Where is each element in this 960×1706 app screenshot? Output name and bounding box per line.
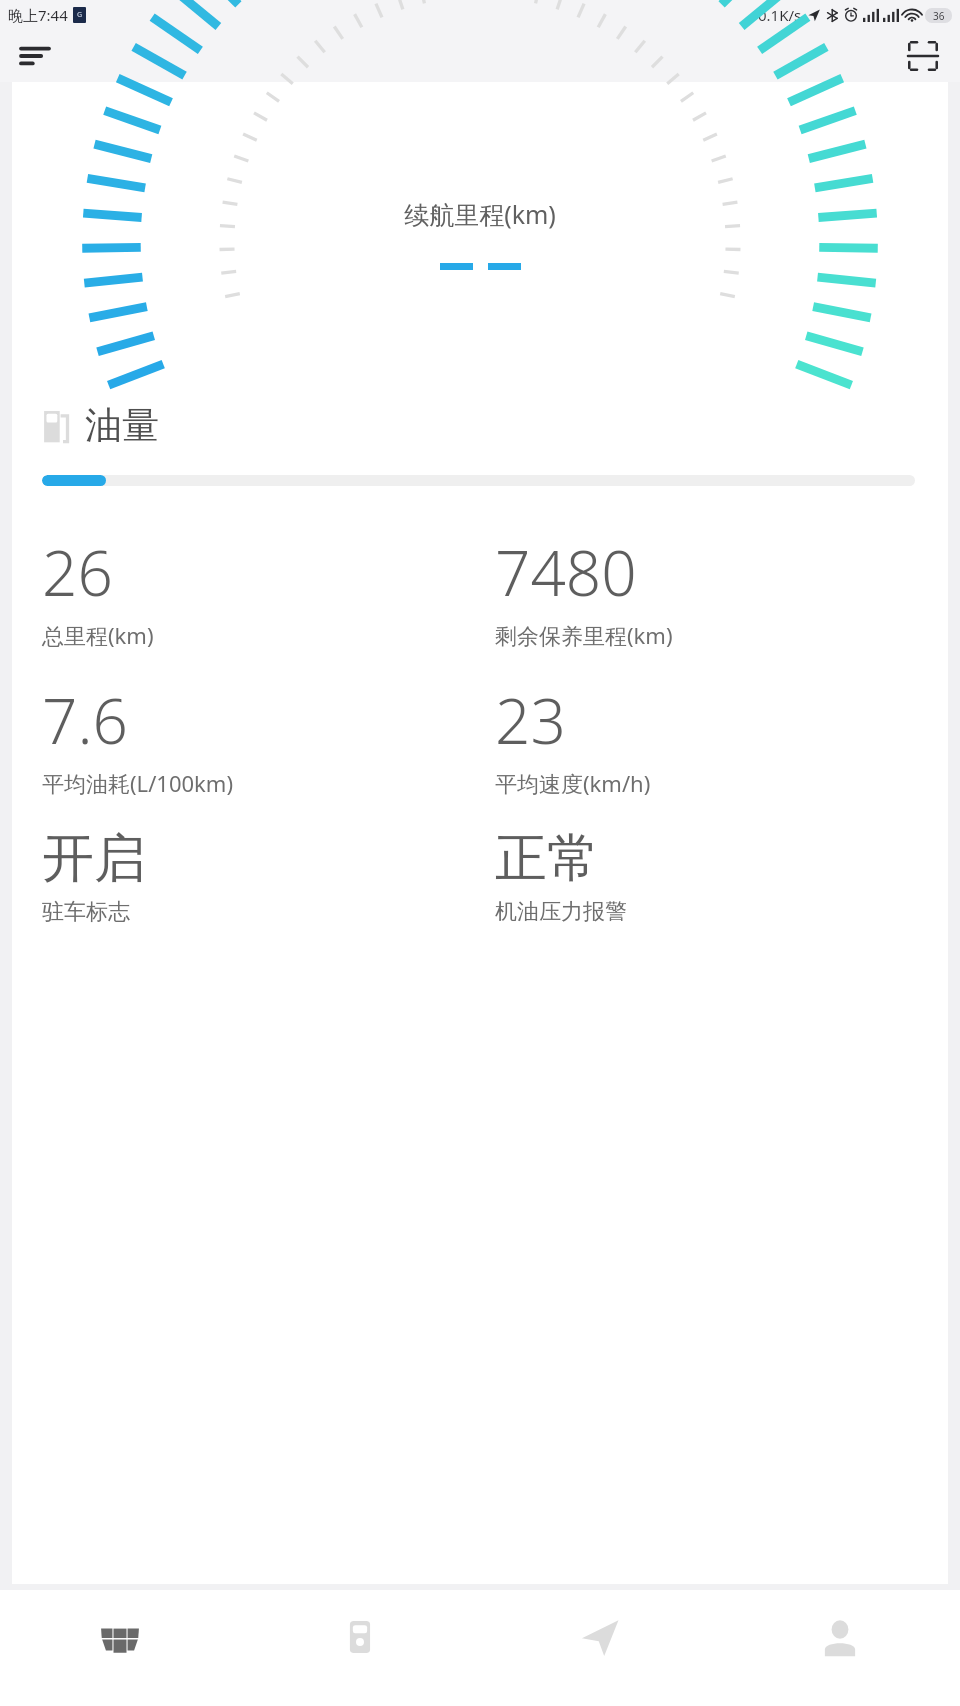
staticText: 剩余保养里程(km) xyxy=(495,620,673,650)
staticText: 正常 xyxy=(495,826,599,892)
staticText: 23 xyxy=(495,678,566,762)
staticText: 7480 xyxy=(495,530,637,614)
staticText: 7.6 xyxy=(42,678,128,762)
staticText: 晚上7:44 xyxy=(8,5,68,25)
staticText: 26 xyxy=(42,530,113,614)
staticText: 驻车标志 xyxy=(42,898,130,926)
staticText: 开启 xyxy=(42,826,146,892)
staticText: 总里程(km) xyxy=(42,620,154,650)
button[interactable]: Scan xyxy=(900,33,946,79)
button[interactable]: Navigation xyxy=(480,1590,720,1706)
button[interactable]: Remote key xyxy=(240,1590,480,1706)
staticText: G xyxy=(77,10,83,20)
button[interactable]: Menu xyxy=(12,33,58,79)
staticText: 平均速度(km/h) xyxy=(495,768,651,798)
staticText: 平均油耗(L/100km) xyxy=(42,768,233,798)
button[interactable]: Profile xyxy=(720,1590,960,1706)
staticText: 油量 xyxy=(85,402,159,449)
button[interactable]: Vehicle xyxy=(0,1590,240,1706)
staticText: 机油压力报警 xyxy=(495,898,627,926)
staticText: 0.1K/s xyxy=(758,5,802,25)
staticText: 续航里程(km) xyxy=(404,197,556,231)
staticText: 36 xyxy=(933,9,945,23)
